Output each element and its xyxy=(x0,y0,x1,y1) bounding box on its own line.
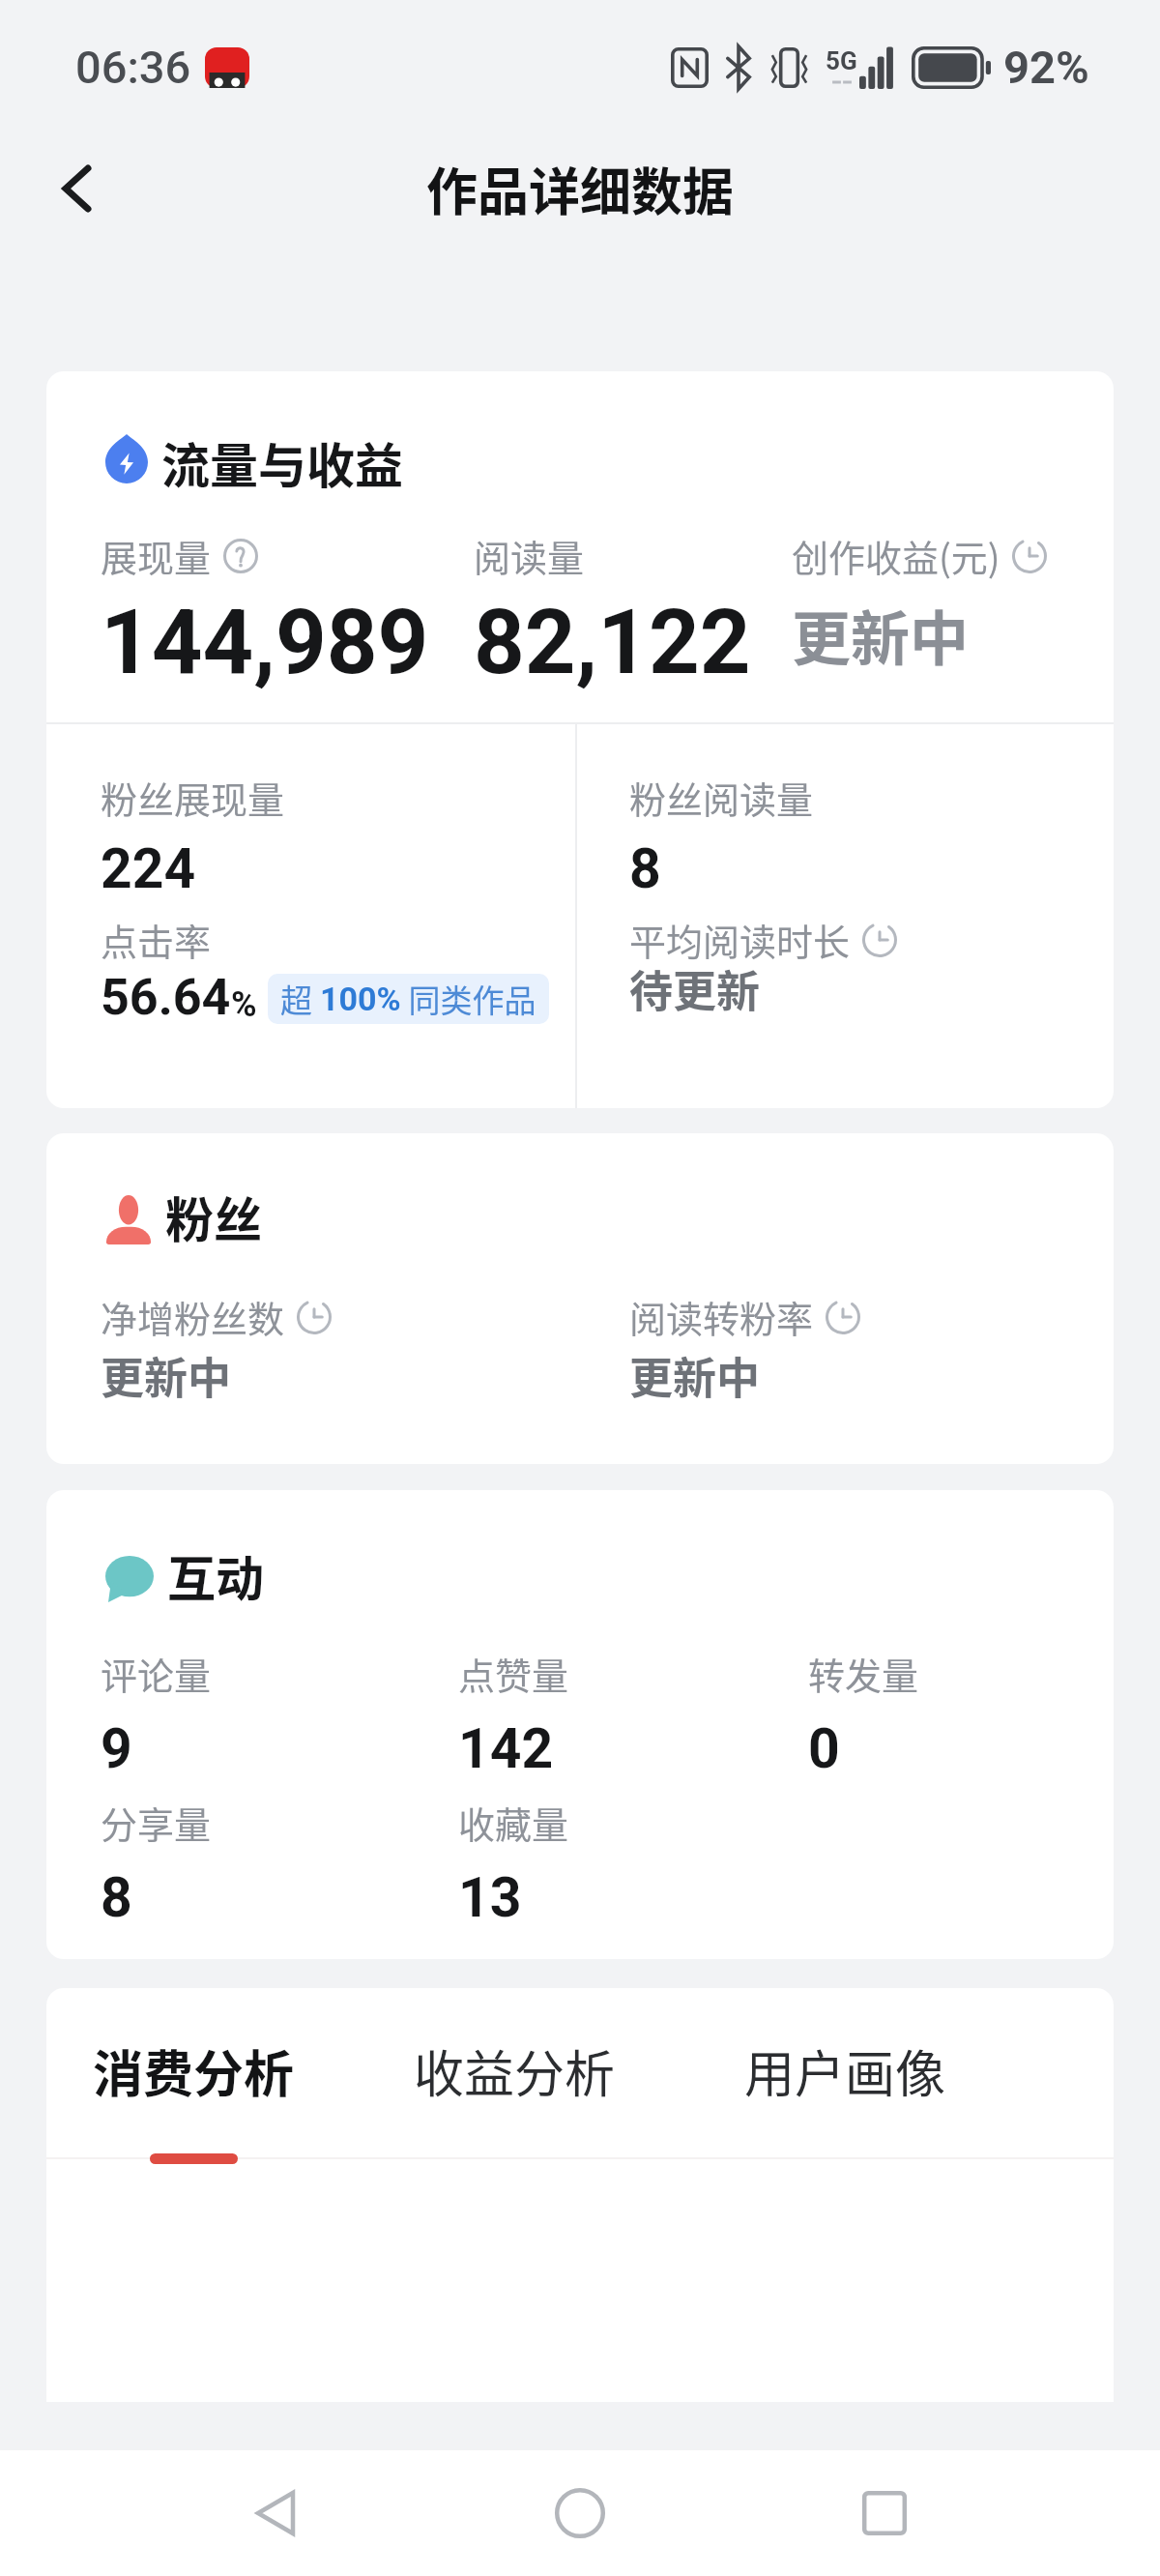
staticText: 互动 xyxy=(167,1540,264,1610)
staticText: 收藏量 xyxy=(458,1796,569,1849)
staticText: 平均阅读时长 xyxy=(629,913,851,966)
staticText: 展现量 xyxy=(101,529,212,582)
staticText: 消费分析 xyxy=(93,2034,295,2107)
staticText: 56.64 xyxy=(101,968,231,1027)
staticText: 用户画像 xyxy=(744,2034,946,2107)
staticText: 224 xyxy=(101,836,196,901)
button[interactable]: Home xyxy=(527,2460,633,2566)
staticText: 06:36 xyxy=(75,41,191,94)
staticText: 收益分析 xyxy=(414,2034,616,2107)
staticText: 5G xyxy=(826,46,857,75)
button[interactable]: 消费分析 xyxy=(89,2034,299,2164)
staticText: 评论量 xyxy=(101,1647,212,1700)
staticText: 转发量 xyxy=(808,1647,919,1700)
staticText: 阅读转粉率 xyxy=(629,1290,814,1343)
staticText: 待更新 xyxy=(629,957,761,1020)
staticText: 0 xyxy=(808,1716,840,1781)
staticText: 9 xyxy=(101,1716,132,1781)
staticText: 超 xyxy=(280,976,320,1022)
staticText: 创作收益(元) xyxy=(792,529,1000,582)
staticText: 粉丝 xyxy=(165,1182,262,1251)
button[interactable]: 收益分析 xyxy=(410,2034,620,2164)
staticText: 点击率 xyxy=(101,913,212,966)
staticText: 同类作品 xyxy=(401,976,536,1022)
staticText: 流量与收益 xyxy=(161,427,403,497)
staticText: 点赞量 xyxy=(458,1647,569,1700)
staticText: 阅读量 xyxy=(474,529,585,582)
staticText: 82,122 xyxy=(474,591,751,695)
staticText: 100% xyxy=(320,980,401,1018)
button[interactable]: Back xyxy=(27,138,128,239)
button[interactable]: Back xyxy=(222,2460,329,2566)
staticText: 13 xyxy=(458,1865,522,1930)
staticText: 粉丝阅读量 xyxy=(629,771,814,824)
staticText: 作品详细数据 xyxy=(426,152,734,226)
staticText: 92% xyxy=(1003,41,1089,94)
staticText: 8 xyxy=(629,836,661,901)
staticText: 净增粉丝数 xyxy=(101,1290,285,1343)
staticText: 更新中 xyxy=(101,1344,232,1407)
staticText: 144,989 xyxy=(101,591,429,695)
staticText: 8 xyxy=(101,1865,132,1930)
button[interactable]: Recent apps xyxy=(831,2460,938,2566)
staticText: 粉丝展现量 xyxy=(101,771,285,824)
staticText: 分享量 xyxy=(101,1796,212,1849)
staticText: % xyxy=(231,984,257,1025)
staticText: 更新中 xyxy=(792,592,970,677)
staticText: 142 xyxy=(458,1716,554,1781)
staticText: 更新中 xyxy=(629,1344,761,1407)
button[interactable]: 用户画像 xyxy=(740,2034,950,2164)
